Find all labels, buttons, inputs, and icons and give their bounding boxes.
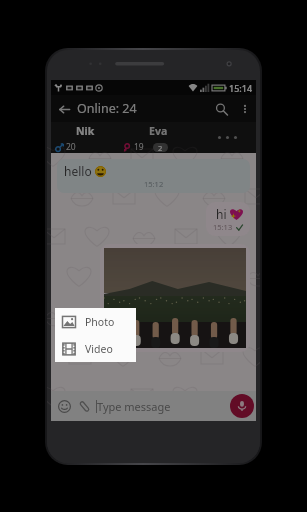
button[interactable]: Nik bbox=[51, 122, 119, 153]
button[interactable]: Video bbox=[55, 335, 136, 362]
staticText: 2 bbox=[158, 143, 163, 152]
staticText: 19 bbox=[134, 141, 144, 153]
button[interactable]: Type message bbox=[96, 391, 230, 421]
staticText: Nik bbox=[76, 124, 95, 138]
staticText: Online: 24 bbox=[77, 100, 137, 117]
staticText: 15:12 bbox=[144, 179, 164, 189]
staticText: Photo bbox=[85, 315, 115, 329]
button[interactable]: Photo bbox=[55, 308, 136, 335]
staticText: hi bbox=[216, 206, 227, 222]
button[interactable]: hello bbox=[57, 159, 250, 193]
button[interactable]: Record voice message bbox=[230, 394, 254, 418]
staticText: 20 bbox=[66, 141, 76, 153]
button[interactable]: Back bbox=[51, 96, 77, 122]
staticText: hello bbox=[64, 163, 92, 179]
staticText: Video bbox=[85, 342, 113, 356]
button[interactable] bbox=[100, 244, 250, 352]
staticText: Eva bbox=[149, 124, 168, 138]
staticText: 15:14 bbox=[229, 82, 253, 94]
button[interactable]: Emoji bbox=[55, 397, 73, 415]
staticText: 15:13 bbox=[213, 222, 233, 232]
button[interactable]: More tabs bbox=[198, 122, 256, 153]
staticText: Type message bbox=[97, 399, 171, 414]
button[interactable]: More options bbox=[234, 98, 256, 120]
button[interactable]: Attach file bbox=[75, 397, 93, 415]
button[interactable]: Eva bbox=[119, 122, 198, 153]
button[interactable]: Search bbox=[208, 96, 234, 122]
button[interactable]: hi bbox=[206, 202, 250, 236]
